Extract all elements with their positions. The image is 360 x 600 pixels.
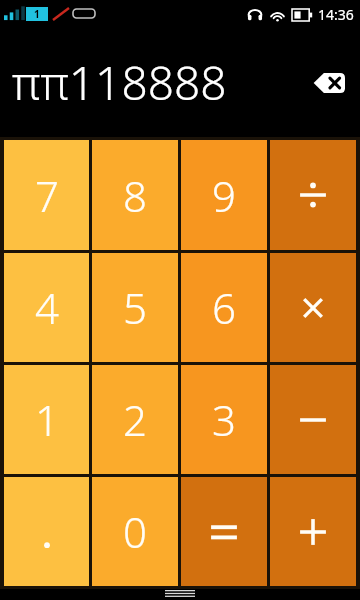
button[interactable]: 7 xyxy=(4,140,89,250)
button[interactable]: Divide xyxy=(270,140,356,250)
button[interactable]: Subtract xyxy=(270,365,356,474)
staticText: 8 xyxy=(123,167,147,224)
staticText: 5 xyxy=(123,279,147,336)
staticText: 1 xyxy=(34,7,40,21)
button[interactable]: Add xyxy=(270,477,356,586)
button[interactable]: 2 xyxy=(92,365,178,474)
button[interactable]: 4 xyxy=(4,253,89,362)
button[interactable]: 9 xyxy=(181,140,267,250)
staticText: ππ118888 xyxy=(12,51,227,114)
button[interactable]: 1 xyxy=(4,365,89,474)
button[interactable]: Equals xyxy=(181,477,267,586)
staticText: 9 xyxy=(212,167,236,224)
staticText: 7 xyxy=(35,167,59,224)
staticText: 1 xyxy=(35,391,59,448)
button[interactable]: 6 xyxy=(181,253,267,362)
button[interactable]: 3 xyxy=(181,365,267,474)
staticText: 3 xyxy=(212,391,236,448)
button[interactable]: 8 xyxy=(92,140,178,250)
button[interactable]: Backspace xyxy=(308,66,350,100)
staticText: 0 xyxy=(123,503,147,560)
staticText: 2 xyxy=(123,391,147,448)
button[interactable]: 5 xyxy=(92,253,178,362)
staticText: 6 xyxy=(212,279,236,336)
staticText: 4 xyxy=(35,279,59,336)
button[interactable]: 0 xyxy=(92,477,178,586)
button[interactable]: Decimal point xyxy=(4,477,89,586)
button[interactable]: Multiply xyxy=(270,253,356,362)
staticText: 14:36 xyxy=(318,5,354,24)
